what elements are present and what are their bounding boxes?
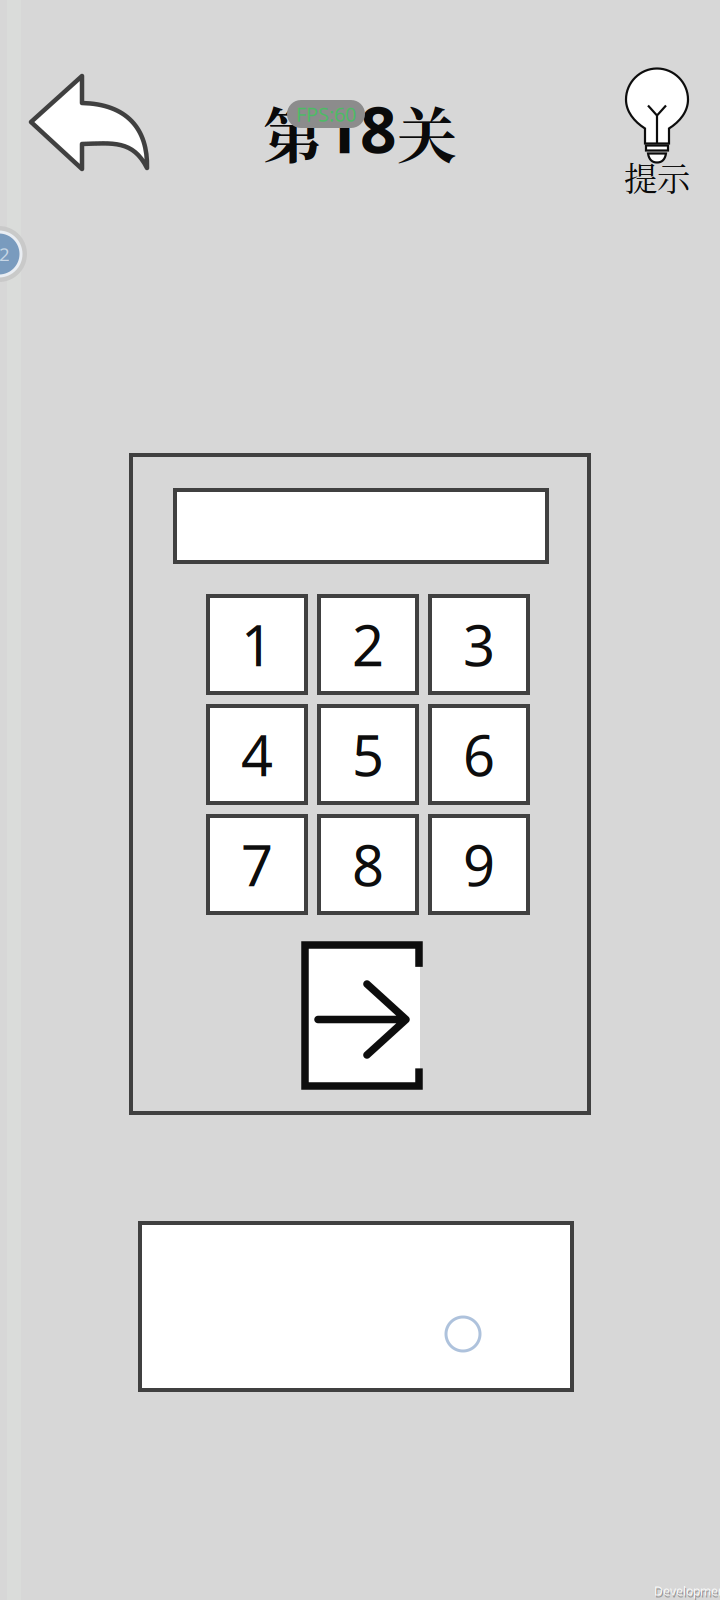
staticText: 3 — [463, 607, 495, 682]
button[interactable]: 7 — [208, 816, 306, 913]
button[interactable]: Back — [29, 74, 150, 171]
button[interactable]: 1 — [208, 596, 306, 693]
button[interactable]: 5 — [319, 706, 417, 803]
staticText: FPS:60 — [296, 101, 356, 127]
staticText: 9 — [463, 827, 495, 902]
staticText: 7 — [241, 827, 273, 902]
button[interactable]: 6 — [430, 706, 528, 803]
staticText: 1 — [241, 607, 273, 682]
button[interactable]: 9 — [430, 816, 528, 913]
staticText: 6 — [463, 717, 495, 792]
staticText: 4 — [241, 717, 273, 792]
button[interactable]: 提示 — [607, 64, 707, 194]
staticText: Development Build — [655, 1585, 720, 1600]
staticText: 第18关 — [263, 86, 457, 174]
staticText: 2 — [352, 607, 384, 682]
staticText: 8 — [352, 827, 384, 902]
button[interactable]: Enter — [299, 939, 420, 1087]
button[interactable]: 8 — [319, 816, 417, 913]
staticText: Development Build — [654, 1583, 720, 1599]
button[interactable]: 4 — [208, 706, 306, 803]
staticText: 22 — [0, 242, 10, 266]
staticText: 提示 — [624, 153, 690, 200]
button[interactable]: 3 — [430, 596, 528, 693]
staticText: 5 — [352, 717, 384, 792]
button[interactable]: 2 — [319, 596, 417, 693]
